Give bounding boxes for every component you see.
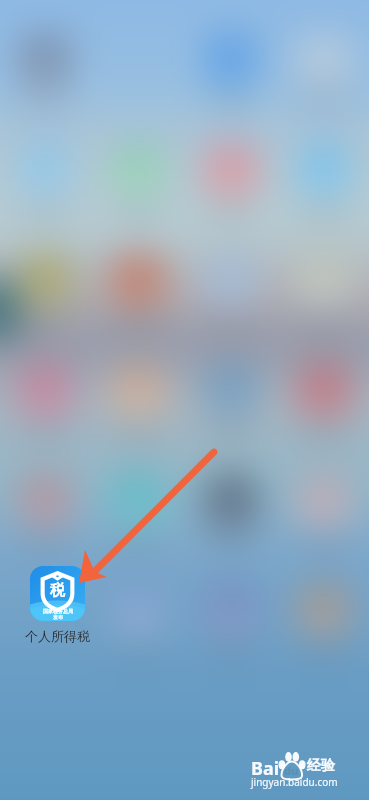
staticText: jingyan.baidu.com xyxy=(251,775,338,789)
staticText: 税 xyxy=(50,581,65,600)
staticText: 经验 xyxy=(307,757,335,775)
button[interactable]: 税 xyxy=(24,566,90,650)
other: Pointer arrow xyxy=(0,0,369,800)
staticText: 发布 xyxy=(53,614,63,620)
staticText: du xyxy=(284,763,299,778)
staticText: Bai xyxy=(251,756,280,781)
staticText: 个人所得税 xyxy=(25,628,90,644)
staticText: 国家税务总局 xyxy=(43,608,73,614)
